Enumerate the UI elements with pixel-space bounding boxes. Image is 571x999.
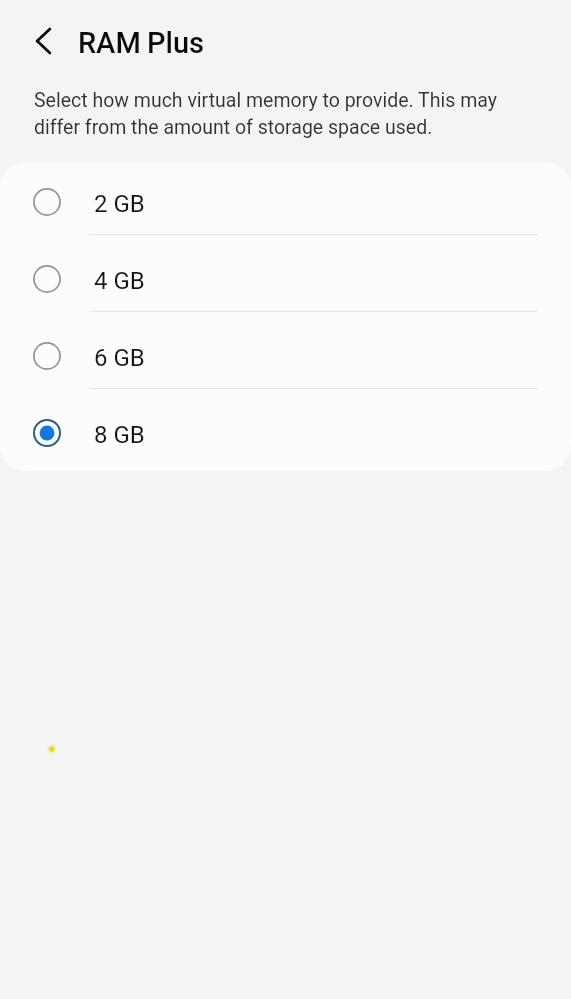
button[interactable]: 2 GB [0, 162, 571, 239]
button[interactable]: 6 GB [0, 316, 571, 393]
staticText: 2 GB [94, 190, 145, 218]
staticText: 4 GB [94, 267, 145, 295]
staticText: 8 GB [94, 421, 145, 449]
staticText: Select how much virtual memory to provid… [34, 89, 519, 139]
button[interactable]: 4 GB [0, 239, 571, 316]
staticText: RAM [78, 26, 141, 60]
staticText: Plus [147, 26, 205, 60]
button[interactable]: 8 GB [0, 393, 571, 470]
staticText: 6 GB [94, 344, 145, 372]
button[interactable]: Navigate up [23, 21, 63, 61]
